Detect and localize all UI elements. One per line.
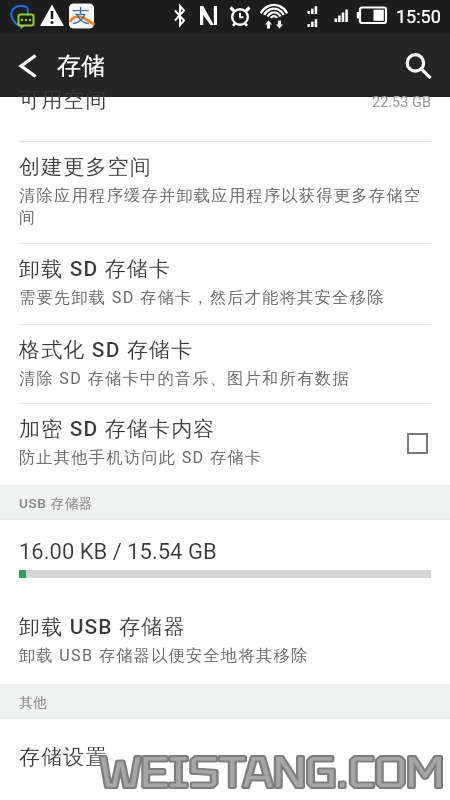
staticText: 卸载 SD 存储卡 (19, 256, 172, 282)
staticText: 22.53 GB (372, 94, 431, 111)
button[interactable]: 16.00 KB / 15.54 GB (0, 520, 450, 601)
button[interactable]: Back (0, 34, 56, 97)
button[interactable]: 卸载 SD 存储卡 (0, 244, 450, 324)
staticText: 防止其他手机访问此 SD 存储卡 (19, 447, 263, 467)
button[interactable]: 卸载 USB 存储器 (0, 601, 450, 684)
staticText: 其他 (19, 694, 48, 711)
staticText: USB 存储器 (19, 495, 94, 512)
button[interactable]: 加密 SD 存储卡内容 (0, 404, 450, 485)
staticText: 清除应用程序缓存并卸载应用程序以获得更多存储空间 (19, 185, 431, 228)
button[interactable]: 格式化 SD 存储卡 (0, 325, 450, 403)
staticText: 15:50 (396, 6, 441, 27)
button[interactable]: 存储设置 (0, 719, 450, 800)
staticText: 创建更多空间 (19, 154, 152, 180)
staticText: 加密 SD 存储卡内容 (19, 416, 216, 442)
staticText: 16.00 KB / 15.54 GB (19, 539, 217, 565)
staticText: 存储 (57, 51, 105, 81)
staticText: 卸载 USB 存储器以便安全地将其移除 (19, 645, 309, 665)
staticText: 可用空间 (19, 87, 108, 113)
button[interactable]: 创建更多空间 (0, 142, 450, 243)
staticText: 支 (72, 5, 90, 28)
staticText: 存储设置 (19, 744, 108, 770)
staticText: 卸载 USB 存储器 (19, 614, 186, 640)
button[interactable]: 可用空间 (0, 97, 450, 141)
button[interactable]: Search (394, 34, 442, 97)
staticText: 清除 SD 存储卡中的音乐、图片和所有数据 (19, 368, 350, 388)
staticText: 需要先卸载 SD 存储卡，然后才能将其安全移除 (19, 287, 385, 307)
staticText: WEISTANG.COM (100, 745, 445, 800)
staticText: 格式化 SD 存储卡 (19, 337, 194, 363)
staticText: WEISTANG.COM (100, 745, 445, 800)
